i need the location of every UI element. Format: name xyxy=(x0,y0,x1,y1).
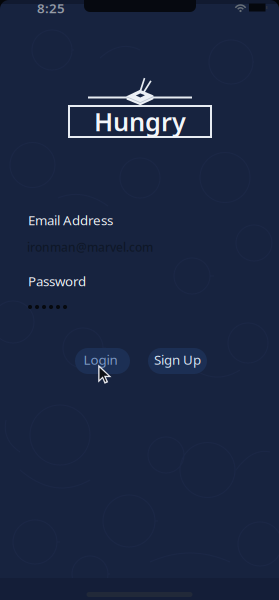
staticText: ironman@marvel.com xyxy=(27,239,153,255)
staticText: Password xyxy=(28,272,86,290)
staticText: Hungry xyxy=(94,105,186,138)
button[interactable]: Password field xyxy=(0,0,279,600)
staticText: Email Address xyxy=(28,211,113,229)
button[interactable]: Login xyxy=(75,348,130,374)
button[interactable]: Email Address field xyxy=(0,0,279,600)
staticText: Login xyxy=(83,351,117,368)
staticText: Sign Up xyxy=(154,351,201,368)
staticText: 8:25 xyxy=(37,0,65,17)
button[interactable]: Sign Up xyxy=(148,348,207,374)
